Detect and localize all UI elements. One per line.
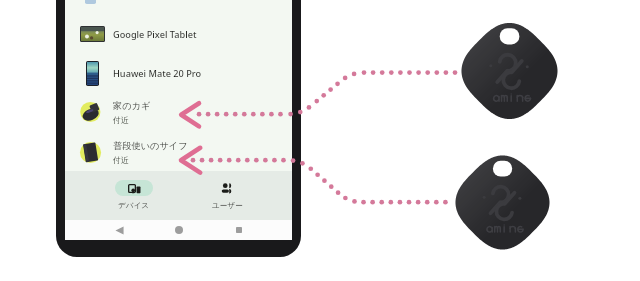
button[interactable]: Google Pixel Tablet xyxy=(65,15,292,53)
button[interactable]: ユーザー xyxy=(199,171,255,220)
staticText: 普段使いのサイフ xyxy=(113,140,188,152)
staticText: 家のカギ xyxy=(113,100,151,112)
button[interactable]: 家のカギ xyxy=(65,93,292,131)
staticText: デバイス xyxy=(118,201,150,211)
staticText: Huawei Mate 20 Pro xyxy=(113,67,202,80)
staticText: ユーザー xyxy=(212,201,243,211)
staticText: 付近 xyxy=(113,115,129,125)
button[interactable]: Huawei Mate 20 Pro xyxy=(65,54,292,92)
button[interactable]: 普段使いのサイフ xyxy=(65,133,292,171)
staticText: Google Pixel Tablet xyxy=(113,28,197,41)
button[interactable]: デバイス xyxy=(106,171,162,220)
button[interactable]: Back xyxy=(111,222,127,238)
button[interactable]: Home xyxy=(171,222,187,238)
staticText: 付近 xyxy=(113,155,129,165)
button[interactable]: Recents xyxy=(231,222,247,238)
